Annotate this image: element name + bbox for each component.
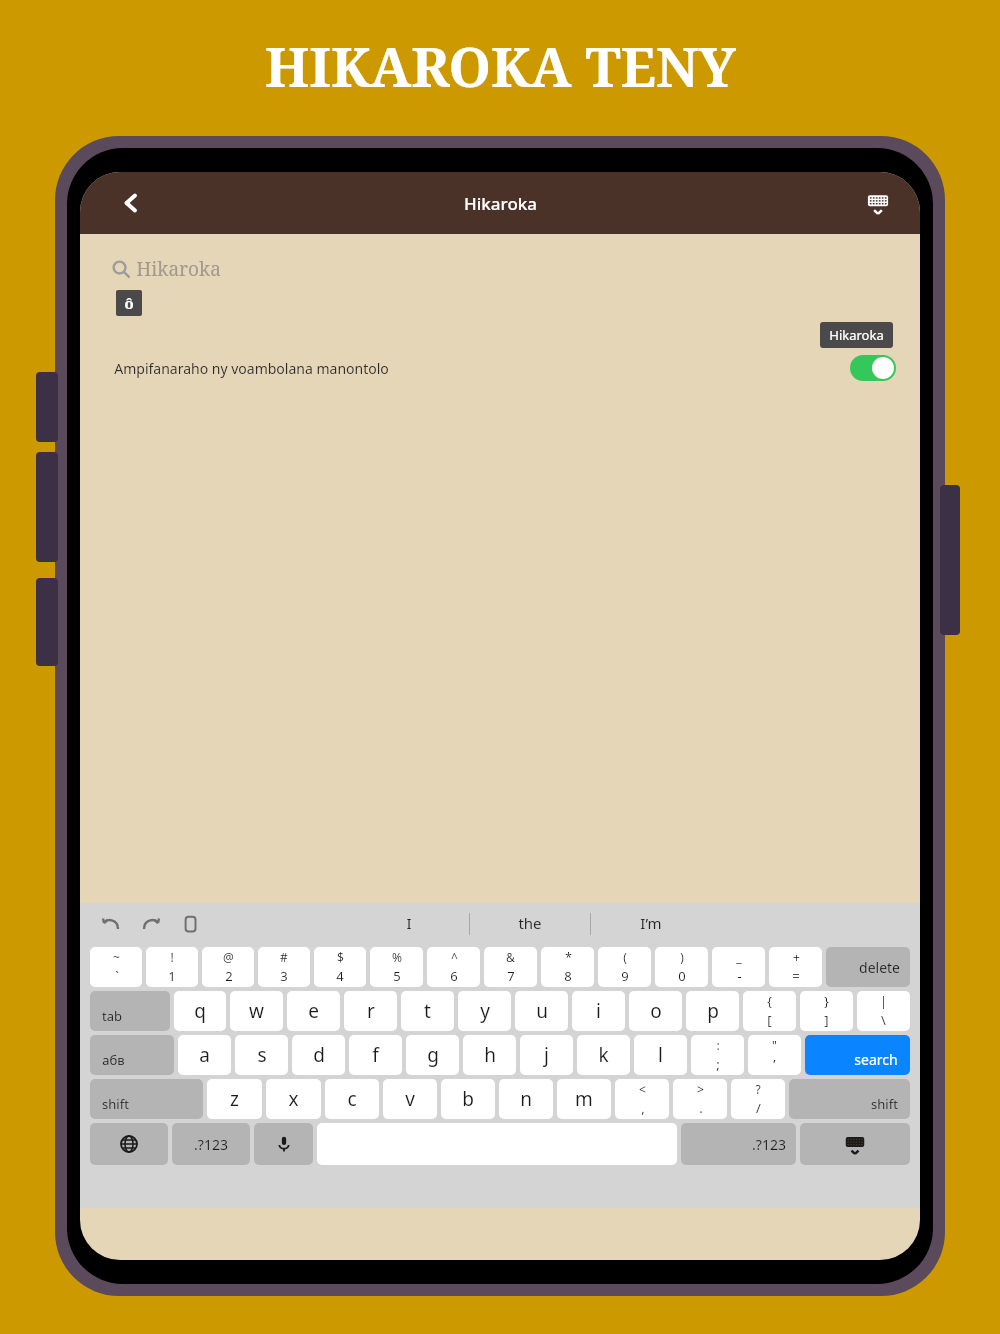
staticText: . — [699, 1099, 703, 1117]
staticText: - — [737, 967, 742, 985]
button[interactable]: j — [520, 1035, 573, 1075]
button[interactable]: % — [370, 947, 423, 987]
staticText: search — [854, 1050, 898, 1069]
button[interactable]: l — [634, 1035, 687, 1075]
button[interactable]: ~ — [90, 947, 142, 987]
button[interactable]: m — [557, 1079, 611, 1119]
staticText: 2 — [225, 967, 233, 985]
button[interactable]: Undo — [98, 911, 124, 937]
button[interactable]: ^ — [427, 947, 480, 987]
button[interactable]: ? — [731, 1079, 785, 1119]
staticText: @ — [223, 949, 234, 965]
button[interactable]: I’m — [591, 913, 711, 933]
staticText: f — [372, 1042, 379, 1068]
button[interactable]: e — [287, 991, 340, 1031]
button[interactable]: o — [629, 991, 682, 1031]
button[interactable]: v — [383, 1079, 437, 1119]
button[interactable]: q — [174, 991, 226, 1031]
button[interactable]: Dictate — [254, 1123, 313, 1165]
staticText: v — [405, 1086, 415, 1112]
button[interactable]: k — [577, 1035, 630, 1075]
staticText: % — [392, 949, 402, 965]
button[interactable]: i — [572, 991, 625, 1031]
button[interactable]: Dismiss keyboard — [800, 1123, 910, 1165]
button[interactable]: .?123 — [681, 1123, 796, 1165]
staticText: ( — [623, 949, 627, 965]
button[interactable]: delete — [826, 947, 910, 987]
button[interactable]: { — [743, 991, 796, 1031]
staticText: .?123 — [752, 1135, 786, 1154]
staticText: ` — [115, 967, 119, 985]
staticText: < — [639, 1081, 646, 1097]
button[interactable]: < — [615, 1079, 669, 1119]
button[interactable]: .?123 — [172, 1123, 250, 1165]
staticText: u — [536, 998, 548, 1024]
staticText: Hikaroka — [829, 326, 884, 344]
button[interactable]: r — [344, 991, 397, 1031]
staticText: Hikaroka — [464, 192, 537, 215]
button[interactable]: ( — [598, 947, 651, 987]
button[interactable]: Redo — [138, 911, 164, 937]
button[interactable]: Language — [90, 1123, 168, 1165]
button[interactable]: tab — [90, 991, 170, 1031]
button[interactable]: Ampifanaraho ny voambolana manontolo — [80, 342, 920, 394]
staticText: HIKAROKA TENY — [265, 29, 736, 103]
button[interactable]: : — [691, 1035, 744, 1075]
button[interactable]: + — [769, 947, 822, 987]
button[interactable]: > — [673, 1079, 727, 1119]
button[interactable]: the — [470, 913, 590, 933]
staticText: ! — [170, 949, 174, 965]
staticText: 5 — [393, 967, 401, 985]
button[interactable]: * — [541, 947, 594, 987]
button[interactable]: u — [515, 991, 568, 1031]
button[interactable]: & — [484, 947, 537, 987]
button[interactable]: ) — [655, 947, 708, 987]
button[interactable]: Hide keyboard — [856, 181, 900, 225]
button[interactable]: p — [686, 991, 739, 1031]
button[interactable]: ! — [146, 947, 198, 987]
button[interactable]: z — [207, 1079, 262, 1119]
button[interactable]: _ — [712, 947, 765, 987]
button[interactable]: c — [325, 1079, 379, 1119]
staticText: h — [484, 1042, 496, 1068]
button[interactable]: b — [441, 1079, 495, 1119]
button[interactable]: a — [178, 1035, 231, 1075]
staticText: w — [249, 998, 264, 1024]
staticText: ) — [680, 949, 684, 965]
staticText: shift — [102, 1095, 129, 1113]
staticText: & — [506, 949, 515, 965]
button[interactable]: shift — [789, 1079, 910, 1119]
button[interactable]: search — [805, 1035, 910, 1075]
button[interactable]: I — [349, 913, 469, 933]
button[interactable]: s — [235, 1035, 288, 1075]
button[interactable]: # — [258, 947, 310, 987]
button[interactable]: " — [748, 1035, 801, 1075]
button[interactable]: w — [230, 991, 283, 1031]
button[interactable]: y — [458, 991, 511, 1031]
button[interactable]: d — [292, 1035, 345, 1075]
button[interactable]: | — [857, 991, 910, 1031]
button[interactable]: t — [401, 991, 454, 1031]
staticText: 3 — [280, 967, 288, 985]
staticText: c — [347, 1086, 357, 1112]
staticText: ~ — [113, 949, 120, 965]
staticText: p — [707, 998, 719, 1024]
button[interactable]: n — [499, 1079, 553, 1119]
staticText: * — [565, 949, 572, 965]
button[interactable]: Back — [108, 180, 154, 226]
button[interactable]: $ — [314, 947, 366, 987]
button[interactable]: абв — [90, 1035, 174, 1075]
staticText: a — [199, 1042, 210, 1068]
button[interactable]: f — [349, 1035, 402, 1075]
staticText: : — [716, 1037, 720, 1053]
button[interactable]: ô — [116, 290, 142, 316]
button[interactable]: Match whole words toggle — [850, 355, 896, 381]
button[interactable]: Paste — [178, 911, 204, 937]
button[interactable]: h — [463, 1035, 516, 1075]
button[interactable]: } — [800, 991, 853, 1031]
button[interactable]: x — [266, 1079, 321, 1119]
button[interactable]: shift — [90, 1079, 203, 1119]
button[interactable]: g — [406, 1035, 459, 1075]
button[interactable]: @ — [202, 947, 254, 987]
